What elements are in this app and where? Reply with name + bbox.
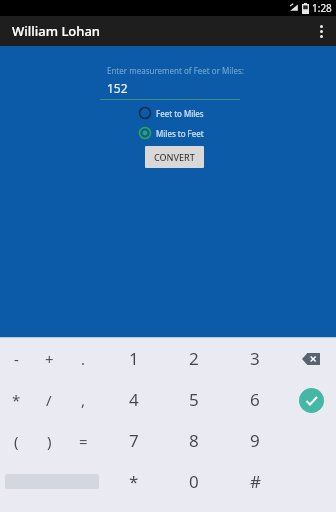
button[interactable]: ) [32,420,66,461]
staticText: - [14,349,19,369]
button[interactable]: 6 [230,379,280,420]
button[interactable]: 7 [109,420,159,461]
staticText: ) [47,431,52,451]
staticText: / [46,390,52,410]
staticText: 1:28 [312,1,332,15]
staticText: . [81,349,86,369]
staticText: 9 [250,429,260,452]
staticText: 2 [189,347,199,370]
staticText: * [12,390,21,410]
button[interactable]: 4 [109,379,159,420]
button[interactable]: 0 [169,461,219,502]
staticText: 4 [129,388,139,411]
button[interactable]: 5 [169,379,219,420]
staticText: 6 [250,388,260,411]
staticText: Feet to Miles [156,108,204,119]
button[interactable]: Backspace [294,342,328,376]
staticText: , [81,390,86,410]
button[interactable]: , [66,379,100,420]
staticText: 1 [129,347,139,370]
staticText: 3 [250,347,260,370]
staticText: * [129,470,139,493]
button[interactable]: 9 [230,420,280,461]
button[interactable]: Space [0,461,103,502]
button[interactable]: Enter [294,383,328,417]
button[interactable]: = [66,420,100,461]
staticText: 0 [189,470,199,493]
staticText: = [79,431,88,451]
button[interactable]: 3 [230,338,280,379]
staticText: 5 [189,388,199,411]
button[interactable]: * [0,379,33,420]
button[interactable]: / [32,379,66,420]
staticText: Miles to Feet [156,128,204,139]
button[interactable]: Feet to Miles [138,106,336,120]
button[interactable]: More options [306,16,336,46]
button[interactable]: 152 [100,80,240,100]
button[interactable]: ( [0,420,33,461]
staticText: Enter measurement of Feet or Miles: [107,65,244,76]
staticText: + [45,349,54,369]
button[interactable]: 1 [109,338,159,379]
button[interactable]: . [66,338,100,379]
staticText: ( [14,431,19,451]
button[interactable]: 8 [169,420,219,461]
button[interactable]: CONVERT [145,146,204,168]
button[interactable]: 2 [169,338,219,379]
staticText: # [250,470,261,493]
button[interactable]: + [32,338,66,379]
button[interactable]: # [230,461,280,502]
button[interactable]: * [109,461,159,502]
staticText: William Lohan [12,22,101,40]
button[interactable]: - [0,338,33,379]
staticText: 8 [189,429,199,452]
staticText: 152 [107,80,128,96]
staticText: 7 [129,429,139,452]
button[interactable]: Miles to Feet [138,126,336,140]
staticText: CONVERT [154,151,195,163]
